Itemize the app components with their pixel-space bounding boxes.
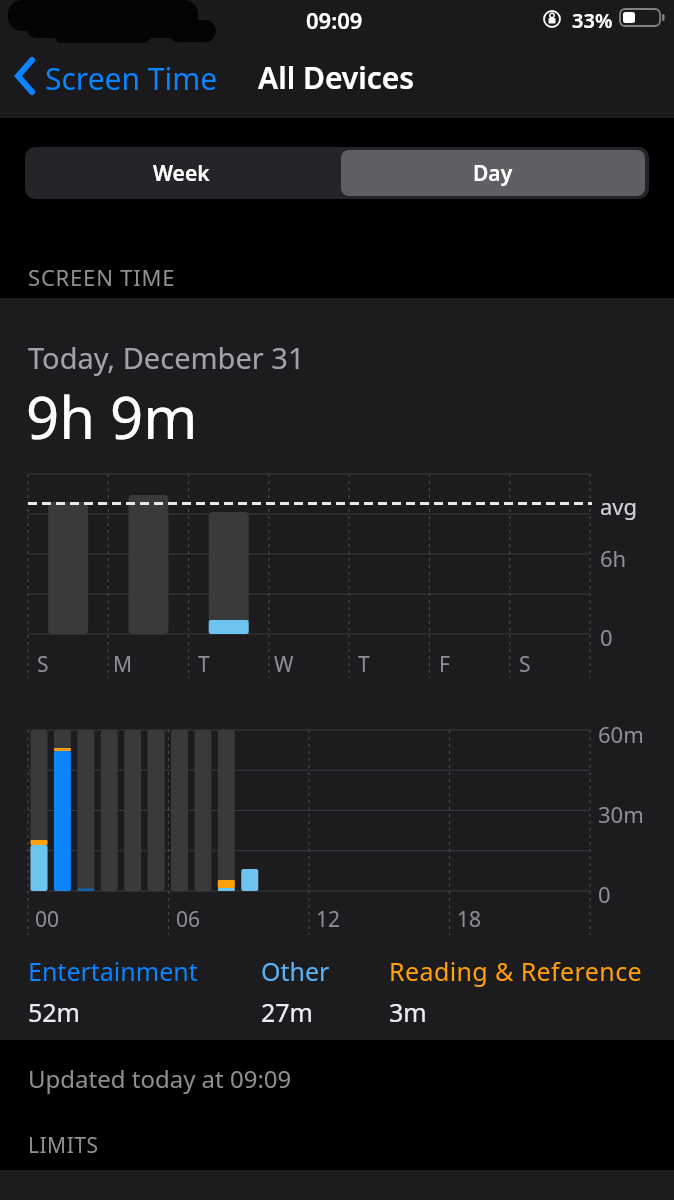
staticText: 52m	[28, 995, 80, 1029]
staticText: 06	[176, 905, 201, 931]
staticText: S	[519, 650, 531, 676]
staticText: avg	[600, 491, 638, 521]
staticText: SCREEN TIME	[28, 262, 176, 292]
staticText: Week	[153, 159, 210, 188]
staticText: T	[358, 650, 370, 676]
staticText: Reading & Reference	[389, 954, 643, 988]
staticText: Updated today at 09:09	[28, 1062, 292, 1095]
staticText: 3m	[389, 995, 427, 1029]
staticText: 0	[598, 879, 611, 909]
staticText: 60m	[598, 719, 644, 749]
staticText: 27m	[261, 995, 313, 1029]
staticText: T	[198, 650, 210, 676]
staticText: Other	[261, 954, 330, 988]
staticText: LIMITS	[28, 1131, 99, 1160]
staticText: Screen Time	[45, 58, 218, 99]
staticText: S	[37, 650, 49, 676]
staticText: 33%	[572, 7, 613, 34]
staticText: 6h	[600, 543, 627, 573]
staticText: 00	[35, 905, 60, 931]
staticText: Day	[473, 159, 513, 188]
staticText: M	[113, 650, 133, 676]
staticText: All Devices	[258, 57, 415, 98]
staticText: 18	[457, 905, 482, 931]
staticText: 30m	[598, 799, 644, 829]
staticText: 09:09	[306, 5, 363, 35]
staticText: 9h 9m	[26, 377, 198, 456]
staticText: Today, December 31	[28, 338, 305, 377]
staticText: Entertainment	[28, 954, 198, 988]
staticText: 12	[316, 905, 341, 931]
staticText: W	[274, 650, 294, 676]
staticText: F	[439, 650, 450, 676]
staticText: 0	[600, 622, 613, 652]
